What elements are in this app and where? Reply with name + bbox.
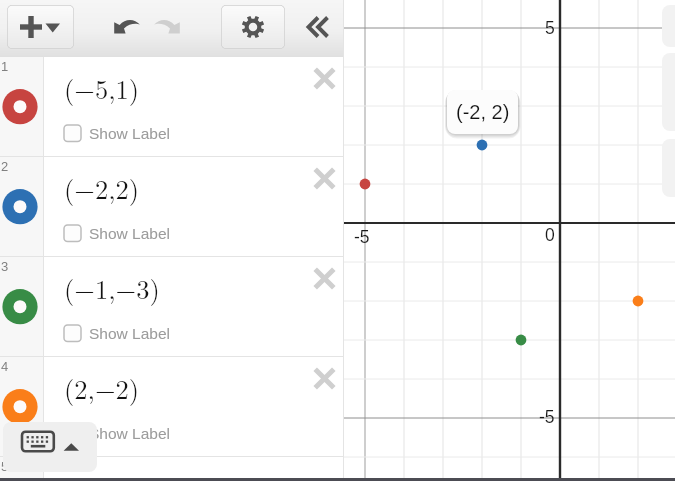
button[interactable]: Toggle keyboard: [3, 422, 97, 472]
staticText: (−2,2): [64, 169, 140, 207]
staticText: -5: [539, 407, 555, 427]
button[interactable]: Delete expression: [302, 56, 346, 100]
button[interactable]: Undo: [113, 17, 141, 37]
button[interactable]: Show Label: [63, 324, 171, 343]
staticText: 5: [545, 18, 555, 38]
staticText: 3: [1, 259, 9, 274]
staticText: 0: [545, 225, 555, 245]
button[interactable]: Show Label: [63, 424, 171, 443]
staticText: -5: [354, 227, 370, 247]
staticText: 5: [1, 459, 9, 474]
staticText: 2: [1, 159, 9, 174]
staticText: (−1,−3): [64, 269, 160, 307]
staticText: (2,−2): [64, 369, 140, 407]
button[interactable]: 1: [0, 57, 344, 157]
button[interactable]: Show Label: [63, 124, 171, 143]
staticText: 4: [1, 359, 9, 374]
button[interactable]: Add expression: [7, 5, 74, 49]
staticText: (-2, 2): [456, 101, 510, 123]
staticText: Show Label: [89, 325, 171, 342]
button[interactable]: Delete expression: [302, 356, 346, 400]
button[interactable]: 2: [0, 157, 344, 257]
staticText: (−5,1): [64, 69, 140, 107]
button[interactable]: Delete expression: [302, 156, 346, 200]
button[interactable]: 3: [0, 257, 344, 357]
staticText: Show Label: [89, 225, 171, 242]
button[interactable]: 5: [0, 457, 344, 481]
staticText: Show Label: [89, 425, 171, 442]
button[interactable]: Redo: [153, 17, 181, 37]
button[interactable]: Delete expression: [302, 256, 346, 300]
button[interactable]: 4: [0, 357, 344, 457]
button[interactable]: Show Label: [63, 224, 171, 243]
button[interactable]: Settings: [221, 5, 285, 49]
staticText: 1: [1, 59, 9, 74]
button[interactable]: (-2, 2): [447, 90, 518, 134]
button[interactable]: Collapse panel: [298, 10, 332, 44]
staticText: Show Label: [89, 125, 171, 142]
